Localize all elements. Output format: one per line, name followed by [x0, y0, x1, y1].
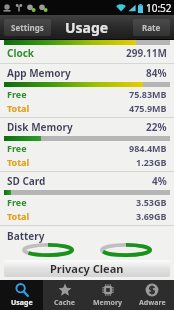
- staticText: 75.83MB: [129, 88, 167, 100]
- staticText: Total: [7, 102, 30, 114]
- staticText: Free: [7, 88, 27, 100]
- staticText: 65%: [40, 265, 57, 276]
- button[interactable]: Adware: [130, 280, 174, 310]
- staticText: Clock: [7, 46, 35, 60]
- staticText: Adware: [139, 298, 166, 308]
- staticText: Usage: [11, 298, 33, 308]
- staticText: 25.0°C: [114, 265, 139, 276]
- button[interactable]: SD Card: [0, 173, 174, 190]
- staticText: Total: [7, 210, 30, 222]
- staticText: Privacy Clean: [50, 261, 124, 276]
- staticText: SD Card: [7, 174, 46, 188]
- staticText: Memory: [93, 298, 123, 308]
- button[interactable]: Disk Memory: [0, 119, 174, 136]
- button[interactable]: Privacy Clean: [4, 260, 170, 277]
- staticText: 4%: [152, 174, 167, 188]
- staticText: 475.9MB: [129, 102, 167, 114]
- staticText: 984.4MB: [129, 142, 167, 154]
- staticText: Total: [7, 156, 30, 168]
- staticText: 84%: [146, 66, 167, 80]
- staticText: 10:52: [146, 1, 172, 15]
- staticText: Usage: [65, 18, 109, 37]
- button[interactable]: Memory: [86, 280, 130, 310]
- staticText: Free: [7, 196, 27, 208]
- staticText: App Memory: [7, 66, 71, 80]
- button[interactable]: Cache: [43, 280, 86, 310]
- staticText: 1.23GB: [136, 156, 167, 168]
- staticText: Rate: [142, 22, 161, 33]
- staticText: Free: [7, 142, 27, 154]
- staticText: 3.53GB: [136, 196, 167, 208]
- staticText: 3.69GB: [136, 210, 167, 222]
- staticText: Disk Memory: [7, 120, 73, 134]
- staticText: 22%: [146, 120, 167, 134]
- button[interactable]: App Memory: [0, 65, 174, 82]
- staticText: Battery: [7, 229, 45, 243]
- button[interactable]: Usage: [0, 280, 43, 310]
- button[interactable]: Settings: [4, 19, 51, 36]
- staticText: 299.11M: [126, 46, 167, 60]
- staticText: Settings: [11, 22, 44, 33]
- staticText: Cache: [54, 298, 76, 308]
- button[interactable]: Rate: [133, 19, 170, 36]
